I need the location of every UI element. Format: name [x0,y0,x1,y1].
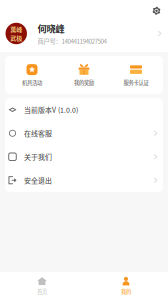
staticText: 关于我们 [24,152,52,162]
staticText: 何晓峰 [37,21,64,35]
staticText: 我的 [121,288,131,295]
staticText: 在线客服 [24,128,52,138]
button[interactable]: 当前版本V (1.0.0) [5,98,163,121]
button[interactable]: 安全退出 [5,168,163,192]
button[interactable]: 萬峰 [0,21,168,46]
staticText: 商户号：140441194027504 [37,36,106,46]
button[interactable]: 设置 [152,0,168,15]
staticText: 机具活动 [22,79,42,86]
staticText: 我的奖励 [74,79,94,86]
button[interactable]: 首页 [0,273,84,299]
button[interactable]: 服务卡认证 [111,61,161,89]
button[interactable]: 在线客服 [5,121,163,145]
staticText: 安全退出 [24,175,52,185]
staticText: 首页 [37,288,47,295]
staticText: 萬峰 [10,25,22,33]
button[interactable]: 机具活动 [7,61,57,89]
staticText: 当前版本V (1.0.0) [24,105,78,115]
staticText: 武极 [10,33,22,42]
button[interactable]: 我的奖励 [59,61,109,89]
button[interactable]: 我的 [84,273,168,299]
staticText: 服务卡认证 [123,79,148,86]
button[interactable]: 关于我们 [5,145,163,168]
